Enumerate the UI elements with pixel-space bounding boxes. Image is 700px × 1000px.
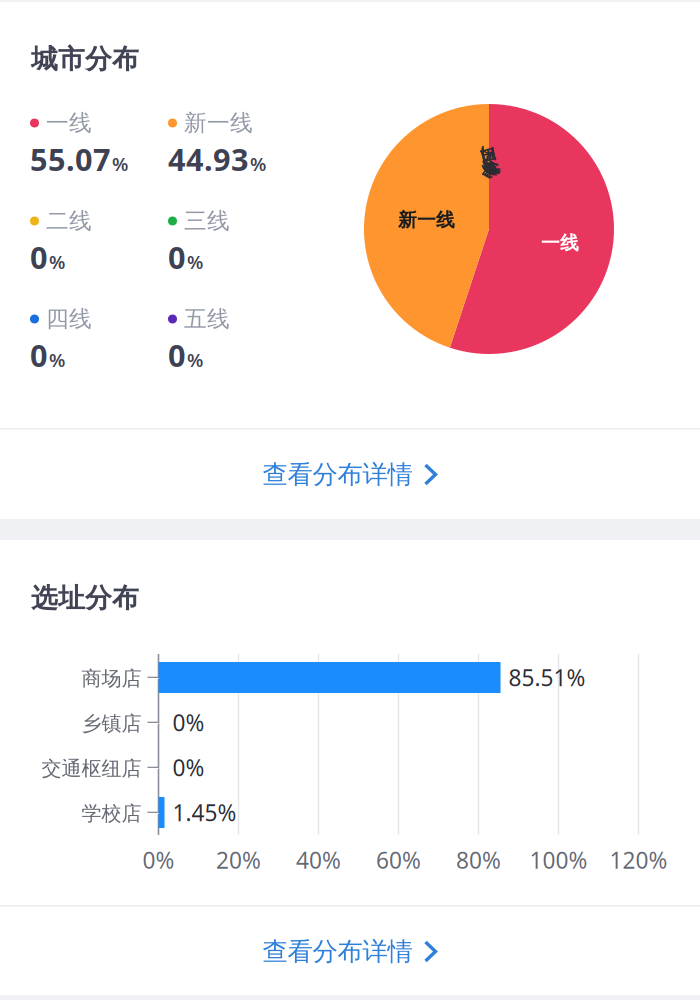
staticText: 一线 xyxy=(46,109,92,137)
staticText: 选址分布 xyxy=(31,582,139,614)
staticText: 55.07 xyxy=(30,139,111,179)
staticText: 三线 xyxy=(474,153,504,171)
staticText: 20% xyxy=(216,845,261,875)
staticText: 四线 xyxy=(475,154,505,172)
staticText: 40% xyxy=(296,845,341,875)
staticText: 1.45% xyxy=(172,797,236,827)
staticText: 120% xyxy=(609,845,667,875)
staticText: 新一线 xyxy=(184,109,253,137)
staticText: 三线 xyxy=(184,207,230,235)
staticText: 一线 xyxy=(541,231,579,254)
staticText: 五线 xyxy=(184,305,230,333)
staticText: 二线 xyxy=(46,207,92,235)
staticText: 0 xyxy=(30,335,48,375)
staticText: 乡镇店 xyxy=(81,711,141,736)
button[interactable]: 查看分布详情 xyxy=(0,429,700,519)
staticText: 学校店 xyxy=(81,801,141,826)
button[interactable]: 查看分布详情 xyxy=(0,906,700,996)
staticText: % xyxy=(250,151,266,176)
staticText: 二线 xyxy=(473,152,503,170)
staticText: 四线 xyxy=(46,305,92,333)
staticText: 查看分布详情 xyxy=(262,459,412,490)
staticText: 0% xyxy=(172,752,204,782)
staticText: 0 xyxy=(30,237,48,277)
staticText: 80% xyxy=(456,845,501,875)
staticText: 0 xyxy=(168,237,186,277)
staticText: 100% xyxy=(529,845,587,875)
staticText: 0% xyxy=(172,707,204,737)
staticText: % xyxy=(112,151,128,176)
staticText: 新一线 xyxy=(398,208,455,231)
staticText: 五线 xyxy=(475,154,505,172)
staticText: 85.51% xyxy=(508,662,585,692)
staticText: 44.93 xyxy=(168,139,249,179)
staticText: 查看分布详情 xyxy=(262,936,412,967)
staticText: % xyxy=(49,249,65,274)
staticText: % xyxy=(187,249,203,274)
staticText: 0% xyxy=(142,845,174,875)
staticText: % xyxy=(187,347,203,372)
staticText: 60% xyxy=(376,845,421,875)
staticText: 商场店 xyxy=(81,666,141,691)
staticText: % xyxy=(49,347,65,372)
staticText: 0 xyxy=(168,335,186,375)
staticText: 城市分布 xyxy=(31,43,139,75)
staticText: 交通枢纽店 xyxy=(41,756,141,781)
